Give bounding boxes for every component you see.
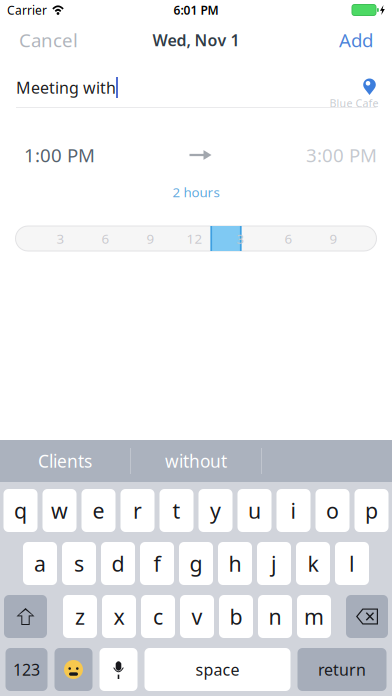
- staticText: Carrier: [7, 2, 47, 18]
- button[interactable]: j: [257, 542, 291, 585]
- button[interactable]: o: [315, 489, 349, 532]
- staticText: m: [304, 602, 324, 631]
- staticText: Blue Cafe: [329, 96, 378, 110]
- staticText: 6:01 PM: [173, 2, 218, 18]
- staticText: e: [92, 496, 104, 525]
- button[interactable]: e: [81, 489, 115, 532]
- staticText: Meeting with: [16, 77, 116, 98]
- staticText: 12: [186, 230, 202, 247]
- button[interactable]: w: [42, 489, 76, 532]
- staticText: i: [290, 496, 296, 525]
- button[interactable]: b: [219, 595, 253, 638]
- staticText: 3:00 PM: [306, 143, 377, 167]
- button[interactable]: z: [63, 595, 97, 638]
- button[interactable]: Delete: [346, 595, 388, 638]
- button[interactable]: 3:00 PM: [306, 142, 377, 168]
- staticText: v: [191, 602, 202, 631]
- button[interactable]: c: [141, 595, 175, 638]
- button[interactable]: r: [120, 489, 154, 532]
- button[interactable]: p: [354, 489, 388, 532]
- button[interactable]: v: [180, 595, 214, 638]
- staticText: u: [248, 496, 261, 525]
- staticText: f: [153, 549, 160, 578]
- staticText: 1:00 PM: [24, 143, 95, 167]
- button[interactable]: t: [159, 489, 193, 532]
- button[interactable]: y: [198, 489, 232, 532]
- staticText: 9: [146, 230, 154, 247]
- staticText: 6: [101, 230, 109, 247]
- staticText: 6: [284, 230, 292, 247]
- button[interactable]: n: [258, 595, 292, 638]
- button[interactable]: Clients: [0, 440, 130, 482]
- staticText: l: [349, 549, 355, 578]
- button[interactable]: d: [101, 542, 135, 585]
- button[interactable]: f: [140, 542, 174, 585]
- button[interactable]: without: [131, 440, 261, 482]
- staticText: Clients: [38, 449, 92, 472]
- staticText: d: [111, 549, 124, 578]
- staticText: space: [195, 659, 239, 680]
- staticText: 9: [329, 230, 337, 247]
- staticText: n: [268, 602, 281, 631]
- button[interactable]: Cancel: [0, 20, 97, 60]
- button[interactable]: h: [218, 542, 252, 585]
- staticText: t: [172, 496, 180, 525]
- button[interactable]: 2 hours: [172, 185, 219, 199]
- button[interactable]: q: [3, 489, 37, 532]
- staticText: z: [75, 602, 85, 631]
- staticText: b: [229, 602, 242, 631]
- staticText: w: [51, 496, 68, 525]
- button[interactable]: Dictation: [99, 648, 137, 691]
- staticText: 3: [236, 230, 244, 247]
- staticText: h: [228, 549, 241, 578]
- button[interactable]: 1:00 PM: [24, 142, 95, 168]
- button[interactable]: u: [237, 489, 271, 532]
- button[interactable]: l: [335, 542, 369, 585]
- staticText: y: [210, 496, 221, 525]
- staticText: c: [153, 602, 163, 631]
- staticText: k: [307, 549, 318, 578]
- staticText: a: [34, 549, 46, 578]
- button[interactable]: Blue Cafe: [325, 78, 383, 108]
- button[interactable]: Emoji: [54, 648, 92, 691]
- button[interactable]: space: [144, 648, 290, 691]
- button[interactable]: a: [23, 542, 57, 585]
- button[interactable]: return: [297, 648, 386, 691]
- staticText: r: [133, 496, 142, 525]
- staticText: p: [365, 496, 378, 525]
- button[interactable]: i: [276, 489, 310, 532]
- staticText: g: [189, 549, 202, 578]
- staticText: Add: [339, 28, 373, 52]
- staticText: 2 hours: [172, 183, 219, 201]
- button[interactable]: s: [62, 542, 96, 585]
- button[interactable]: k: [296, 542, 330, 585]
- button[interactable]: g: [179, 542, 213, 585]
- staticText: without: [165, 449, 227, 472]
- button[interactable]: Add: [320, 20, 392, 60]
- staticText: q: [14, 496, 27, 525]
- staticText: j: [271, 549, 277, 578]
- staticText: o: [326, 496, 339, 525]
- button[interactable]: x: [102, 595, 136, 638]
- staticText: s: [74, 549, 84, 578]
- staticText: 3: [56, 230, 64, 247]
- button[interactable]: 123: [5, 648, 47, 691]
- staticText: x: [113, 602, 124, 631]
- button[interactable]: Shift: [4, 595, 47, 638]
- staticText: Wed, Nov 1: [152, 29, 239, 51]
- button[interactable]: m: [297, 595, 331, 638]
- staticText: return: [318, 659, 366, 680]
- staticText: 123: [13, 659, 40, 680]
- staticText: Cancel: [19, 28, 78, 52]
